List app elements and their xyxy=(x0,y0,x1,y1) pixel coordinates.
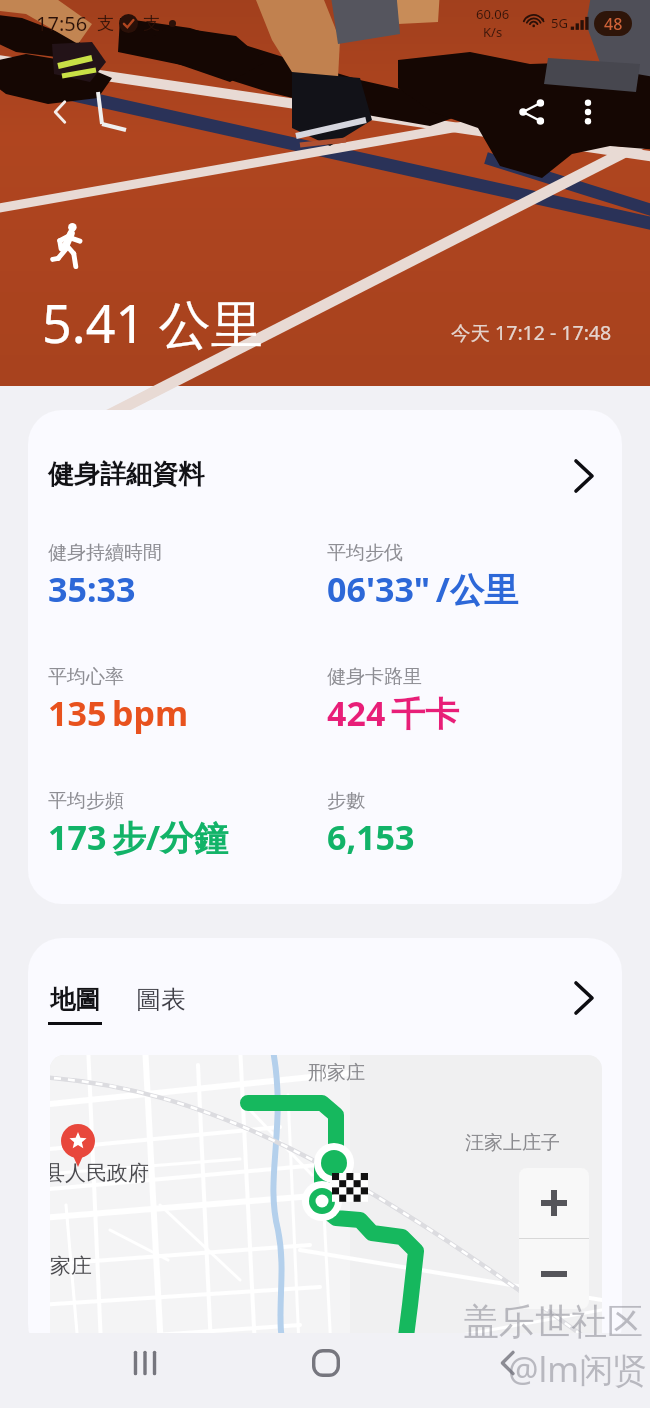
staticText: 步數 xyxy=(327,789,365,813)
staticText: 圖表 xyxy=(136,984,186,1015)
button[interactable]: Back xyxy=(470,1325,545,1400)
staticText: 支 xyxy=(97,13,114,34)
button[interactable]: Recents xyxy=(107,1325,182,1400)
staticText: 5G xyxy=(551,14,568,32)
staticText: 17:56 xyxy=(36,10,88,37)
staticText: 家庄 xyxy=(50,1253,92,1279)
staticText: 平均步伐 xyxy=(327,541,403,565)
button[interactable]: Home xyxy=(288,1325,363,1400)
staticText: 地圖 xyxy=(50,984,100,1015)
staticText: K/s xyxy=(483,23,503,41)
staticText: 健身持續時間 xyxy=(48,541,162,565)
staticText: 健身卡路里 xyxy=(327,665,422,689)
staticText: 6,153 xyxy=(327,814,415,860)
staticText: 盖乐世社区 xyxy=(463,1299,643,1344)
button[interactable]: Share xyxy=(508,88,556,136)
staticText: 平均步頻 xyxy=(48,789,124,813)
staticText: 135 bpm xyxy=(48,690,189,736)
staticText: 173 步/分鐘 xyxy=(48,814,229,860)
staticText: 健身詳細資料 xyxy=(48,458,204,491)
button[interactable]: 地圖 xyxy=(48,984,102,1025)
staticText: 06'33" /公里 xyxy=(327,566,518,612)
staticText: 邢家庄 xyxy=(308,1061,365,1085)
button[interactable]: Open map details xyxy=(562,976,606,1020)
button[interactable]: 圖表 xyxy=(136,984,186,1015)
staticText: 35:33 xyxy=(48,566,136,612)
staticText: 县人民政府 xyxy=(50,1160,149,1186)
button[interactable]: Zoom in xyxy=(519,1168,589,1238)
staticText: 424 千卡 xyxy=(327,690,459,736)
staticText: 5.41 公里 xyxy=(42,287,263,358)
button[interactable]: 健身詳細資料 xyxy=(28,410,622,904)
button[interactable]: More options xyxy=(564,88,612,136)
button[interactable]: Zoom out xyxy=(519,1239,589,1309)
staticText: @lm闲贤 xyxy=(508,1346,648,1392)
staticText: 60.06 xyxy=(476,5,510,23)
button[interactable]: Back xyxy=(36,88,84,136)
staticText: 支 xyxy=(143,13,160,34)
staticText: 今天 17:12 - 17:48 xyxy=(451,319,612,346)
staticText: 48 xyxy=(604,13,623,35)
staticText: 平均心率 xyxy=(48,665,124,689)
staticText: 汪家上庄子 xyxy=(465,1131,560,1155)
